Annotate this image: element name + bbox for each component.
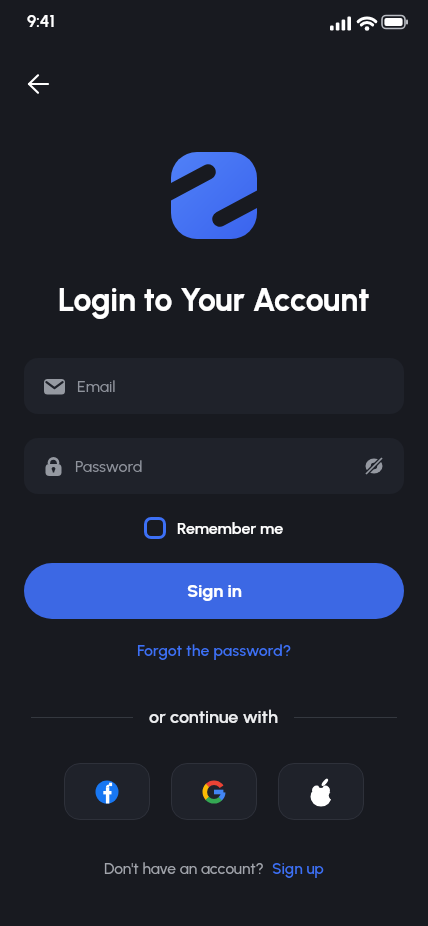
- button[interactable]: [16, 62, 60, 106]
- staticText: Email: [77, 377, 116, 396]
- button[interactable]: Email: [24, 358, 404, 414]
- button[interactable]: Forgot the password?: [137, 641, 292, 660]
- staticText: Remember me: [177, 519, 284, 538]
- staticText: Sign up: [272, 859, 324, 878]
- staticText: Don't have an account?: [104, 859, 264, 878]
- button[interactable]: [171, 763, 257, 820]
- button[interactable]: Password: [24, 438, 404, 494]
- staticText: Login to Your Account: [58, 281, 370, 319]
- button[interactable]: Sign in: [24, 563, 404, 619]
- staticText: 9:41: [27, 11, 55, 31]
- button[interactable]: Sign up: [272, 859, 324, 878]
- button[interactable]: Remember me: [0, 516, 428, 540]
- staticText: or continue with: [149, 706, 278, 728]
- staticText: Forgot the password?: [137, 641, 292, 660]
- staticText: Password: [75, 457, 143, 476]
- button[interactable]: [278, 763, 364, 820]
- staticText: Sign in: [187, 580, 242, 602]
- button[interactable]: [64, 763, 150, 820]
